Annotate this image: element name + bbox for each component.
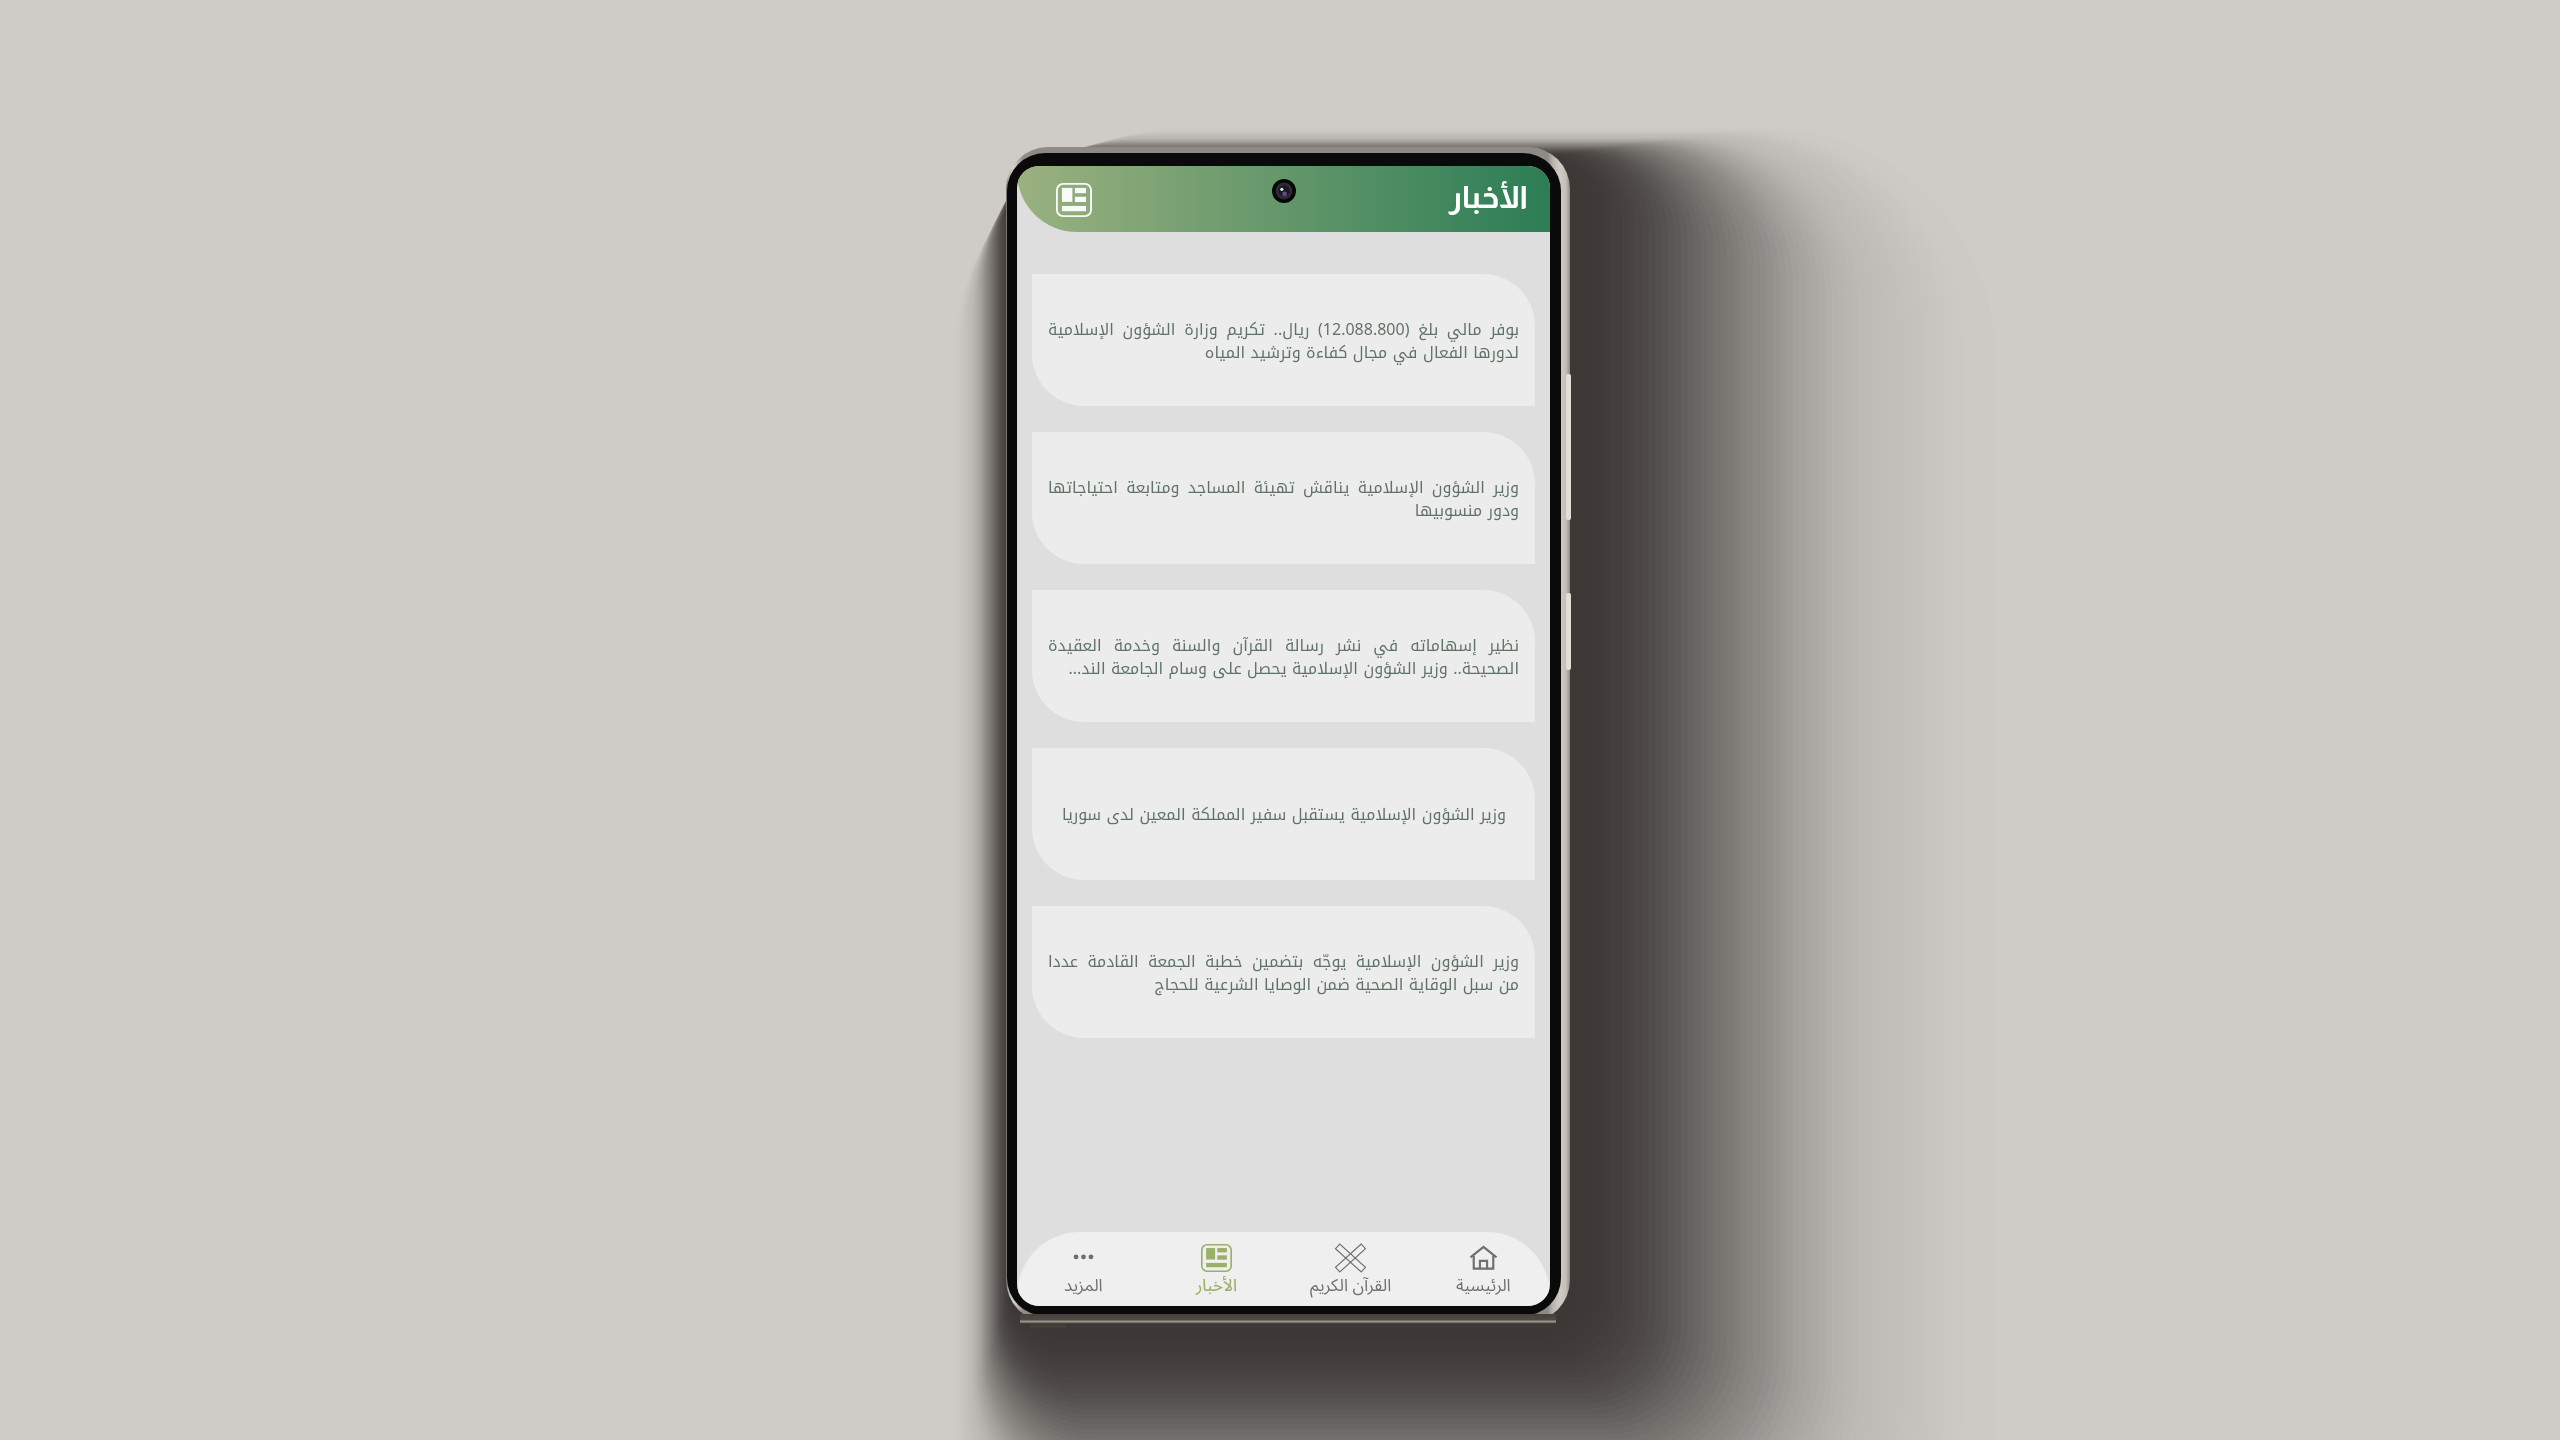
- staticText: المزيد: [1064, 1268, 1103, 1304]
- button[interactable]: وزير الشؤون الإسلامية يستقبل سفير المملك…: [1032, 748, 1535, 880]
- staticText: القرآن الكريم: [1310, 1268, 1392, 1304]
- button[interactable]: القرآن الكريم: [1284, 1232, 1417, 1306]
- staticText: وزير الشؤون الإسلامية يستقبل سفير المملك…: [1061, 799, 1506, 829]
- button[interactable]: وزير الشؤون الإسلامية يناقش تهيئة المساج…: [1032, 432, 1535, 564]
- staticText: نظير إسهاماته في نشر رسالة القرآن والسنة…: [1048, 630, 1519, 683]
- button[interactable]: بوفر مالي بلغ (12.088.800) ريال.. تكريم …: [1032, 274, 1535, 406]
- staticText: وزير الشؤون الإسلامية يناقش تهيئة المساج…: [1048, 472, 1519, 525]
- staticText: بوفر مالي بلغ (12.088.800) ريال.. تكريم …: [1048, 314, 1519, 367]
- button[interactable]: News: [1056, 183, 1092, 217]
- staticText: الأخبار: [1196, 1268, 1237, 1304]
- button[interactable]: المزيد: [1017, 1232, 1150, 1306]
- staticText: وزير الشؤون الإسلامية يوجّه بتضمين خطبة …: [1048, 946, 1519, 999]
- button[interactable]: وزير الشؤون الإسلامية يوجّه بتضمين خطبة …: [1032, 906, 1535, 1038]
- button[interactable]: نظير إسهاماته في نشر رسالة القرآن والسنة…: [1032, 590, 1535, 722]
- staticText: الرئيسية: [1456, 1268, 1511, 1304]
- button[interactable]: الأخبار: [1150, 1232, 1283, 1306]
- button[interactable]: الرئيسية: [1417, 1232, 1550, 1306]
- staticText: الأخبار: [1449, 180, 1528, 215]
